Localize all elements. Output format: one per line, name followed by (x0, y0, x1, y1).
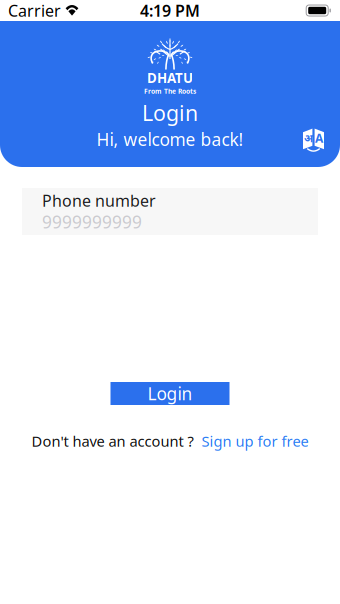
staticText: 4:19 PM (140, 0, 200, 21)
staticText: Login (147, 382, 192, 405)
staticText: Sign up for free (201, 431, 308, 451)
button[interactable]: Don't have an account ? (31, 430, 308, 452)
staticText: Hi, welcome back! (96, 128, 243, 151)
staticText: अ (304, 131, 313, 145)
button[interactable]: Login (110, 382, 229, 405)
staticText: Login (142, 99, 198, 127)
staticText: Carrier (8, 0, 61, 21)
staticText: Phone number (42, 190, 156, 211)
staticText: A (315, 130, 323, 146)
staticText: DHATU (147, 69, 193, 87)
staticText: 9999999999 (42, 210, 142, 233)
staticText: Don't have an account ? (31, 431, 193, 451)
button[interactable]: Change language (303, 126, 324, 153)
staticText: From The Roots (144, 87, 196, 96)
